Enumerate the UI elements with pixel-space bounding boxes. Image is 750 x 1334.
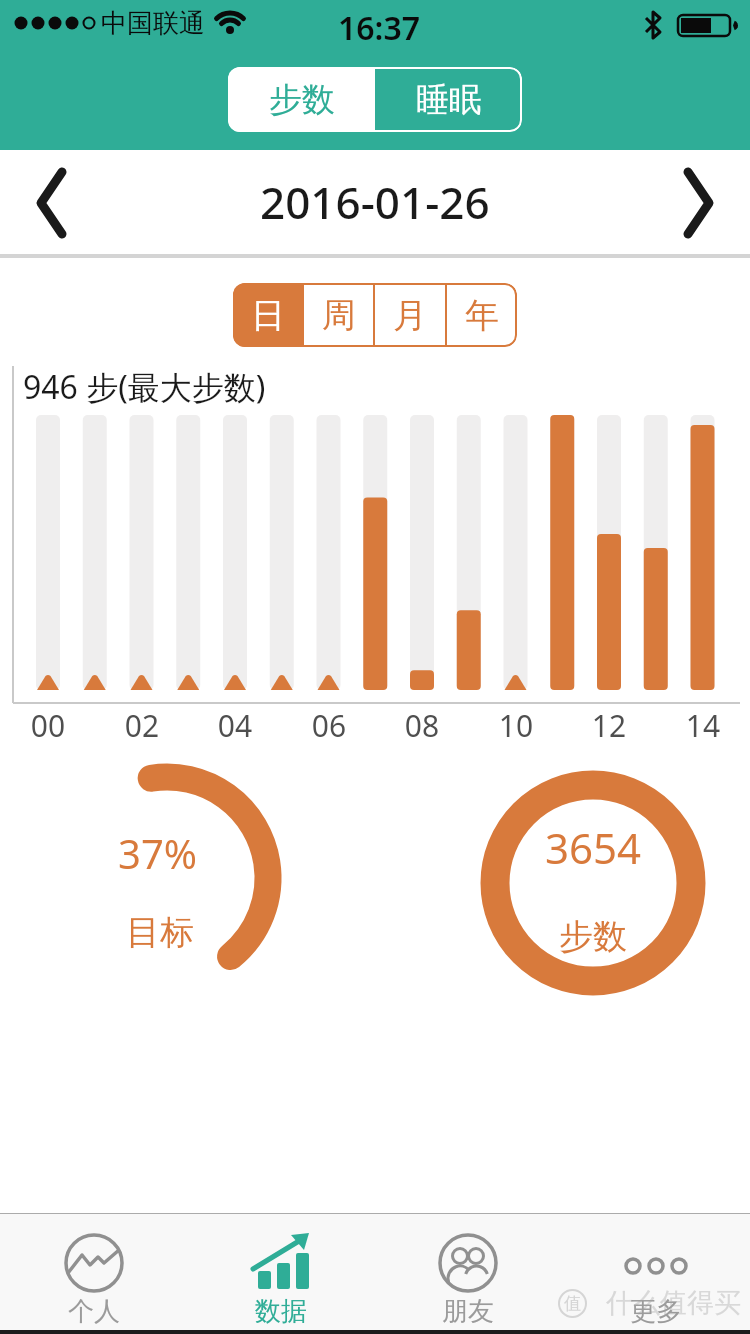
staticText: 步数 <box>559 915 627 958</box>
button[interactable]: 更多 <box>562 1214 750 1330</box>
staticText: 年 <box>465 294 499 337</box>
staticText: 周 <box>322 294 356 337</box>
staticText: 10 <box>486 705 546 746</box>
staticText: 946 步(最大步数) <box>23 365 266 409</box>
button[interactable]: 月 <box>375 283 445 347</box>
staticText: 04 <box>205 705 265 746</box>
button[interactable] <box>660 150 750 254</box>
staticText: 什么值得买 <box>606 1286 741 1320</box>
button[interactable]: 周 <box>304 283 373 347</box>
staticText: 00 <box>18 705 78 746</box>
staticText: 08 <box>392 705 452 746</box>
staticText: 睡眠 <box>416 79 482 121</box>
button[interactable]: 年 <box>447 283 517 347</box>
staticText: 14 <box>673 705 733 746</box>
staticText: 值 <box>564 1293 581 1314</box>
staticText: 步数 <box>269 79 335 121</box>
button[interactable]: 日 <box>233 283 302 347</box>
staticText: 37% <box>118 826 197 880</box>
staticText: 2016-01-26 <box>260 172 490 232</box>
staticText: 月 <box>393 294 427 337</box>
button[interactable]: 数据 <box>187 1214 374 1330</box>
staticText: 数据 <box>255 1295 307 1328</box>
staticText: 目标 <box>126 911 194 954</box>
staticText: 更多 <box>630 1295 682 1328</box>
button[interactable]: 步数 <box>228 67 375 132</box>
staticText: 12 <box>579 705 639 746</box>
button[interactable]: 睡眠 <box>375 67 522 132</box>
button[interactable]: 个人 <box>0 1214 187 1330</box>
staticText: 日 <box>251 294 285 337</box>
staticText: 中国联通 <box>101 7 205 40</box>
staticText: 16:37 <box>338 6 421 50</box>
staticText: 3654 <box>545 819 642 876</box>
staticText: 个人 <box>68 1295 120 1328</box>
staticText: 朋友 <box>442 1295 494 1328</box>
button[interactable]: 朋友 <box>374 1214 562 1330</box>
staticText: 06 <box>299 705 359 746</box>
button[interactable] <box>0 150 90 254</box>
staticText: 02 <box>112 705 172 746</box>
